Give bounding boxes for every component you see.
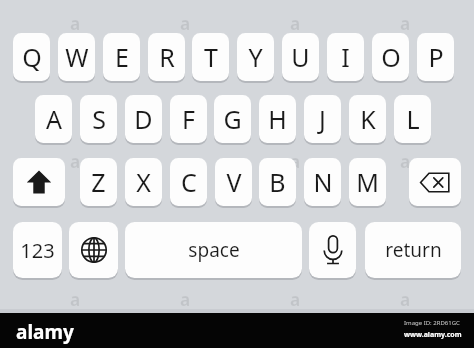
button[interactable]: L xyxy=(394,95,431,143)
button[interactable]: X xyxy=(125,158,162,206)
button[interactable]: 123 xyxy=(13,222,62,278)
button[interactable]: return xyxy=(365,222,461,278)
button[interactable]: O xyxy=(372,33,409,81)
staticText: a xyxy=(70,12,81,35)
button[interactable]: E xyxy=(103,33,140,81)
staticText: B xyxy=(269,165,286,199)
button[interactable]: F xyxy=(170,95,207,143)
staticText: H xyxy=(268,102,287,136)
staticText: a xyxy=(180,12,191,35)
staticText: I xyxy=(341,40,350,74)
button[interactable]: Voice input xyxy=(309,222,356,278)
staticText: V xyxy=(226,165,242,199)
staticText: M xyxy=(356,165,379,199)
staticText: F xyxy=(182,102,195,136)
button[interactable]: Shift xyxy=(13,158,65,206)
button[interactable]: N xyxy=(304,158,341,206)
staticText: O xyxy=(381,40,401,74)
staticText: P xyxy=(428,40,444,74)
staticText: D xyxy=(134,102,153,136)
button[interactable]: W xyxy=(58,33,95,81)
staticText: Image ID: 2RD61GC xyxy=(404,319,460,327)
staticText: a xyxy=(70,288,81,311)
button[interactable]: Q xyxy=(13,33,50,81)
staticText: Y xyxy=(248,40,263,74)
button[interactable]: U xyxy=(282,33,319,81)
button[interactable]: G xyxy=(214,95,251,143)
button[interactable]: D xyxy=(125,95,162,143)
staticText: N xyxy=(313,165,333,199)
staticText: T xyxy=(204,40,218,74)
staticText: L xyxy=(406,102,420,136)
staticText: a xyxy=(70,150,81,173)
button[interactable]: B xyxy=(259,158,296,206)
staticText: R xyxy=(159,40,175,74)
staticText: a xyxy=(290,150,301,173)
staticText: space xyxy=(188,237,240,263)
button[interactable]: H xyxy=(259,95,296,143)
button[interactable]: M xyxy=(349,158,386,206)
button[interactable]: Y xyxy=(237,33,274,81)
staticText: A xyxy=(46,102,62,136)
button[interactable]: J xyxy=(304,95,341,143)
staticText: X xyxy=(136,165,151,199)
staticText: U xyxy=(291,40,310,74)
button[interactable]: K xyxy=(349,95,386,143)
button[interactable]: A xyxy=(35,95,72,143)
staticText: E xyxy=(115,40,129,74)
staticText: a xyxy=(180,288,191,311)
button[interactable]: P xyxy=(417,33,454,81)
button[interactable]: C xyxy=(170,158,207,206)
staticText: W xyxy=(65,40,89,74)
staticText: alamy xyxy=(16,319,74,345)
button[interactable]: V xyxy=(215,158,252,206)
button[interactable]: Z xyxy=(80,158,117,206)
button[interactable]: Switch keyboard xyxy=(69,222,118,278)
button[interactable]: S xyxy=(80,95,117,143)
staticText: K xyxy=(360,102,376,136)
staticText: www.alamy.com xyxy=(404,330,462,340)
staticText: J xyxy=(319,102,326,136)
staticText: return xyxy=(385,237,442,263)
staticText: a xyxy=(400,288,411,311)
staticText: S xyxy=(92,102,106,136)
staticText: a xyxy=(290,12,301,35)
staticText: 123 xyxy=(20,237,55,264)
button[interactable]: R xyxy=(148,33,185,81)
staticText: a xyxy=(290,288,301,311)
staticText: a xyxy=(180,150,191,173)
staticText: a xyxy=(400,150,411,173)
staticText: a xyxy=(400,12,411,35)
staticText: G xyxy=(223,102,242,136)
button[interactable]: space xyxy=(125,222,302,278)
staticText: Z xyxy=(91,165,106,199)
button[interactable]: I xyxy=(327,33,364,81)
button[interactable]: Backspace xyxy=(409,158,461,206)
button[interactable]: T xyxy=(192,33,229,81)
staticText: Q xyxy=(22,40,42,74)
staticText: C xyxy=(181,165,197,199)
